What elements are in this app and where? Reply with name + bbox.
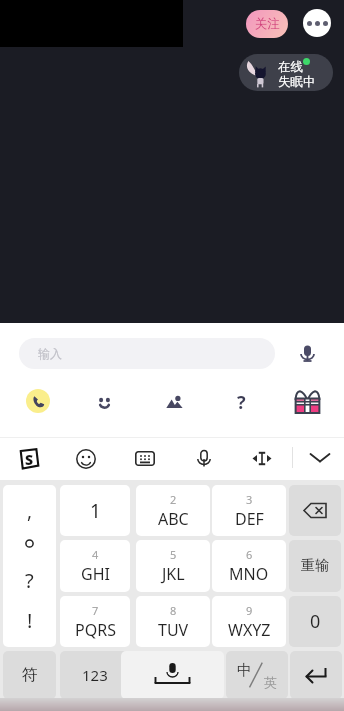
staticText: GHI [81,563,110,585]
staticText: MNO [229,563,269,585]
button[interactable]: Photo [161,389,187,415]
button[interactable]: 8 [136,596,210,647]
staticText: JKL [162,563,185,585]
button[interactable]: Hide keyboard [308,451,332,465]
staticText: 123 [82,665,108,685]
button[interactable]: 重输 [289,540,341,592]
staticText: ? [25,567,34,594]
staticText: ! [27,607,33,634]
staticText: 英 [264,674,277,690]
button[interactable]: 符 [3,651,56,699]
staticText: 在线 [278,59,303,75]
staticText: 中 [237,661,252,680]
staticText: 输入 [38,346,62,361]
button[interactable]: Switch Chinese English [226,651,288,699]
staticText: , [27,498,33,524]
button[interactable]: Call [26,389,50,413]
staticText: ABC [158,508,189,530]
staticText: 0 [310,609,321,634]
button[interactable]: Emoji keyboard [76,449,96,469]
staticText: 3 [246,492,253,507]
button[interactable]: 9 [212,596,286,647]
staticText: 5 [170,547,177,562]
staticText: 8 [170,603,177,618]
staticText: 关注 [255,16,280,32]
staticText: 失眠中 [278,74,316,90]
staticText: TUV [158,619,189,641]
staticText: 重输 [301,557,329,575]
button[interactable]: 7 [60,596,130,647]
staticText: 6 [246,547,253,562]
staticText: S [25,450,34,469]
button[interactable]: 在线 [239,54,333,91]
button[interactable]: Input method [17,448,39,470]
button[interactable]: 0 [289,596,341,647]
button[interactable]: Emoji [91,389,117,415]
button[interactable]: Help [228,389,254,415]
button[interactable]: 4 [60,540,130,592]
staticText: 9 [246,603,253,618]
button[interactable]: Gift [294,389,321,414]
button[interactable]: Punctuation [3,485,56,647]
button[interactable]: Move cursor [250,451,274,466]
staticText: DEF [235,508,264,530]
button[interactable]: 3 [212,485,286,536]
button[interactable]: 1 [60,485,130,536]
button[interactable]: 关注 [246,10,288,38]
staticText: PQRS [75,619,116,641]
button[interactable]: Keyboard layout [135,451,155,466]
staticText: 7 [92,603,99,618]
button[interactable]: Enter [290,651,342,699]
button[interactable]: Backspace [289,485,341,536]
staticText: 4 [92,547,99,562]
button[interactable]: 6 [212,540,286,592]
staticText: 2 [170,492,177,507]
button[interactable]: 123 [60,651,130,699]
button[interactable]: Voice message [296,343,319,366]
staticText: ? [237,390,246,415]
button[interactable]: Voice [194,449,214,469]
staticText: 1 [90,498,101,524]
button[interactable]: 2 [136,485,210,536]
button[interactable]: 输入 [19,338,275,369]
staticText: 符 [22,665,38,685]
button[interactable]: 5 [136,540,210,592]
button[interactable]: More options [303,9,331,37]
button[interactable]: Space [121,651,224,699]
staticText: WXYZ [228,619,271,641]
